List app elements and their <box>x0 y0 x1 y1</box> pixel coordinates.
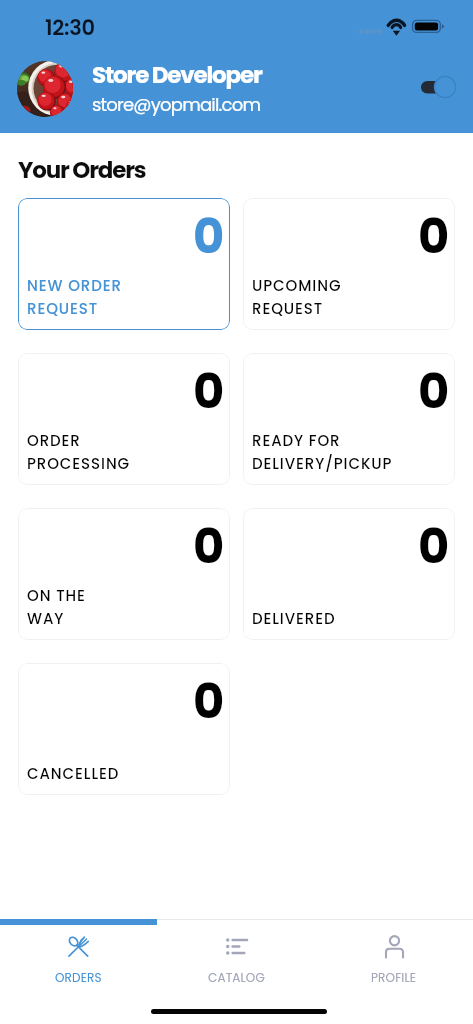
button[interactable]: Profile <box>315 919 473 1024</box>
staticText: PROFILE <box>371 969 417 986</box>
staticText: 0 <box>193 513 225 580</box>
staticText: Store Developer <box>92 59 262 91</box>
button[interactable]: Orders <box>0 919 157 1024</box>
staticText: READY FOR DELIVERY/PICKUP <box>252 430 393 474</box>
staticText: NEW ORDER REQUEST <box>27 275 122 319</box>
staticText: CATALOG <box>208 969 265 986</box>
button[interactable]: 0 <box>18 353 230 485</box>
staticText: Your Orders <box>18 154 146 186</box>
staticText: UPCOMING REQUEST <box>252 275 342 319</box>
staticText: 0 <box>418 358 450 425</box>
staticText: CANCELLED <box>27 763 120 784</box>
button[interactable]: 0 <box>243 353 455 485</box>
staticText: store@yopmail.com <box>92 92 261 117</box>
other: Orders <box>67 935 90 958</box>
other: Catalog <box>225 935 248 958</box>
staticText: ON THE WAY <box>27 585 86 629</box>
staticText: 12:30 <box>45 13 95 42</box>
staticText: 0 <box>193 668 225 735</box>
button[interactable]: Store availability toggle <box>419 73 459 101</box>
button[interactable]: 0 <box>18 508 230 640</box>
button[interactable]: Catalog <box>157 919 315 1024</box>
staticText: ORDERS <box>55 969 102 986</box>
button[interactable]: 0 <box>243 198 455 330</box>
button[interactable]: 0 <box>18 198 230 330</box>
staticText: ORDER PROCESSING <box>27 430 131 474</box>
button[interactable]: 0 <box>243 508 455 640</box>
staticText: 0 <box>193 203 225 270</box>
staticText: 0 <box>418 203 450 270</box>
button[interactable]: 0 <box>18 663 230 795</box>
staticText: 0 <box>193 358 225 425</box>
staticText: 0 <box>418 513 450 580</box>
staticText: DELIVERED <box>252 608 336 629</box>
other: Profile <box>383 935 406 958</box>
